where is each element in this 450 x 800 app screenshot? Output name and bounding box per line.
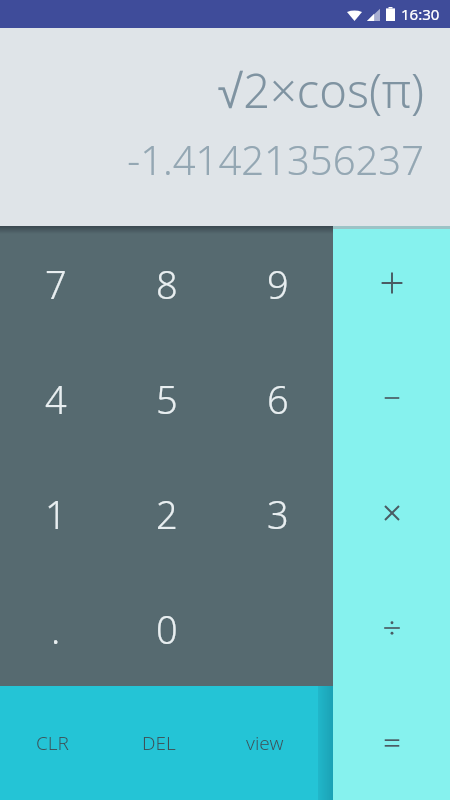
button[interactable]: 5 bbox=[111, 341, 222, 456]
staticText: . bbox=[51, 603, 61, 655]
staticText: 16:30 bbox=[401, 4, 440, 24]
staticText: 4 bbox=[45, 373, 67, 425]
staticText: 0 bbox=[156, 603, 178, 655]
button[interactable]: multiply bbox=[333, 455, 450, 570]
button[interactable]: 2 bbox=[111, 456, 222, 571]
staticText: 3 bbox=[267, 488, 289, 540]
button[interactable]: view bbox=[212, 686, 318, 800]
button[interactable]: 9 bbox=[222, 226, 333, 341]
button[interactable]: minus bbox=[333, 340, 450, 455]
staticText: view bbox=[246, 730, 284, 756]
staticText: 8 bbox=[156, 258, 178, 310]
staticText: -1.41421356237 bbox=[127, 132, 424, 186]
button[interactable]: CLR bbox=[0, 686, 106, 800]
staticText: CLR bbox=[36, 730, 70, 756]
button[interactable]: 0 bbox=[111, 571, 222, 686]
button[interactable]: 4 bbox=[0, 341, 111, 456]
button[interactable]: divide bbox=[333, 570, 450, 685]
button[interactable]: equals bbox=[333, 685, 450, 800]
staticText: 7 bbox=[45, 258, 67, 310]
button[interactable]: 6 bbox=[222, 341, 333, 456]
staticText: 1 bbox=[45, 488, 67, 540]
button[interactable]: 1 bbox=[0, 456, 111, 571]
staticText: 9 bbox=[267, 258, 289, 310]
button[interactable]: 3 bbox=[222, 456, 333, 571]
button[interactable]: 7 bbox=[0, 226, 111, 341]
button[interactable]: plus bbox=[333, 226, 450, 340]
staticText: DEL bbox=[142, 730, 176, 756]
button[interactable]: . bbox=[0, 571, 111, 686]
button[interactable]: DEL bbox=[106, 686, 212, 800]
staticText: √2×cos(π) bbox=[217, 58, 424, 122]
button[interactable]: 8 bbox=[111, 226, 222, 341]
staticText: 6 bbox=[267, 373, 289, 425]
staticText: 2 bbox=[156, 488, 178, 540]
staticText: 5 bbox=[156, 373, 178, 425]
